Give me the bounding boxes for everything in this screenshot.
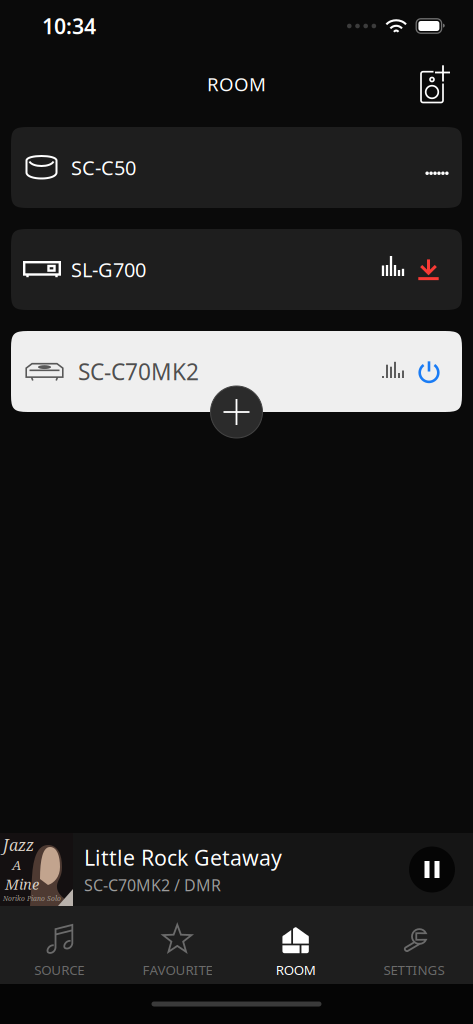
staticText: SC-C70MK2 bbox=[78, 356, 199, 386]
staticText: Mine bbox=[5, 874, 39, 894]
button[interactable]: Add device bbox=[210, 386, 262, 438]
staticText: SC-C70MK2 / DMR bbox=[84, 874, 221, 896]
button[interactable]: FAVOURITE bbox=[118, 906, 236, 984]
staticText: A bbox=[12, 856, 21, 874]
button[interactable]: SL-G700 bbox=[11, 229, 462, 310]
button[interactable]: SOURCE bbox=[0, 906, 118, 984]
button[interactable]: ROOM bbox=[236, 906, 355, 984]
staticText: ROOM bbox=[276, 961, 316, 979]
button[interactable]: SETTINGS bbox=[355, 906, 473, 984]
button[interactable]: SC-C70MK2 bbox=[11, 331, 462, 412]
staticText: Noriko Piano Solo bbox=[3, 894, 61, 903]
staticText: 10:34 bbox=[42, 12, 96, 40]
staticText: ROOM bbox=[207, 72, 266, 96]
staticText: SETTINGS bbox=[383, 961, 444, 979]
staticText: SC-C50 bbox=[71, 154, 136, 181]
button[interactable]: SC-C50 bbox=[11, 127, 462, 208]
button[interactable]: Pause bbox=[409, 846, 455, 892]
staticText: SOURCE bbox=[34, 961, 84, 979]
staticText: SL-G700 bbox=[71, 256, 146, 283]
button[interactable]: Add speaker bbox=[408, 57, 462, 111]
staticText: FAVOURITE bbox=[142, 961, 212, 979]
staticText: Little Rock Getaway bbox=[84, 843, 282, 871]
staticText: Jazz bbox=[3, 834, 34, 856]
